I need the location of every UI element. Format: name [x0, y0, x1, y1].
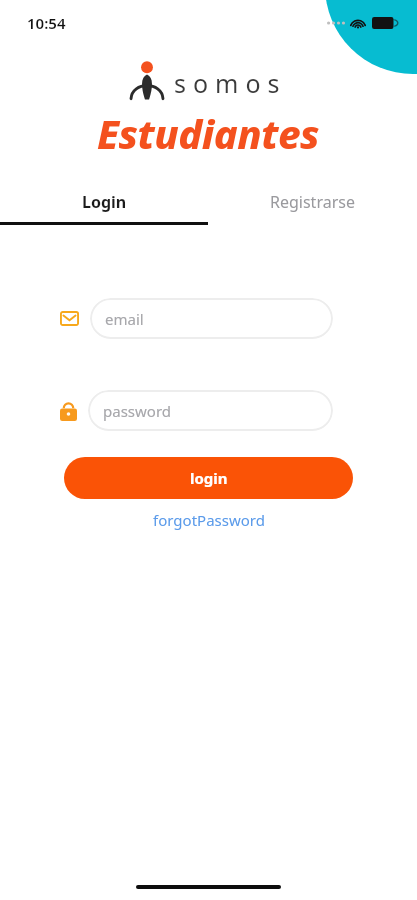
staticText: password	[103, 401, 171, 421]
staticText: login	[190, 468, 228, 488]
staticText: somos	[174, 66, 287, 100]
button[interactable]: Login	[0, 182, 208, 222]
button[interactable]: forgotPassword	[145, 507, 273, 533]
button[interactable]: email	[90, 298, 333, 339]
button[interactable]: password	[88, 390, 333, 431]
staticText: email	[105, 309, 144, 329]
staticText: 10:54	[27, 13, 66, 33]
staticText: Estudiantes	[97, 106, 320, 160]
button[interactable]: Registrarse	[208, 182, 417, 222]
staticText: forgotPassword	[153, 510, 265, 530]
button[interactable]: login	[64, 457, 353, 499]
staticText: Registrarse	[270, 191, 355, 213]
staticText: Login	[82, 191, 127, 213]
